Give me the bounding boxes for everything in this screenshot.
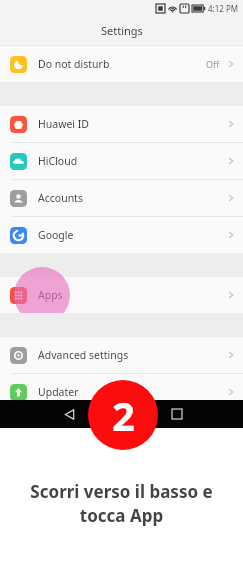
staticText: Apps xyxy=(38,288,228,302)
button[interactable]: Do not disturb xyxy=(0,46,243,82)
staticText: Accounts xyxy=(38,191,228,205)
staticText: Huawei ID xyxy=(38,117,228,131)
staticText: Settings xyxy=(101,23,143,38)
staticText: Google xyxy=(38,228,228,242)
staticText: About phone xyxy=(38,422,228,436)
button[interactable]: Updater xyxy=(0,374,243,410)
staticText: Off xyxy=(206,58,220,70)
staticText: 2 xyxy=(112,388,135,442)
button[interactable]: Back xyxy=(58,403,80,425)
staticText: Advanced settings xyxy=(38,348,228,362)
staticText: HiCloud xyxy=(38,154,228,168)
button[interactable]: Google xyxy=(0,217,243,253)
button[interactable]: Apps xyxy=(0,277,243,313)
staticText: 4:12 PM xyxy=(208,3,239,14)
button[interactable]: Accounts xyxy=(0,180,243,216)
button[interactable]: About phone xyxy=(0,411,243,447)
staticText: Updater xyxy=(38,385,228,399)
button[interactable]: HiCloud xyxy=(0,143,243,179)
button[interactable]: Advanced settings xyxy=(0,337,243,373)
staticText: Scorri verso il basso e tocca App xyxy=(8,480,235,527)
staticText: Do not disturb xyxy=(38,57,206,71)
button[interactable]: Recent apps xyxy=(166,403,188,425)
button[interactable]: Huawei ID xyxy=(0,106,243,142)
